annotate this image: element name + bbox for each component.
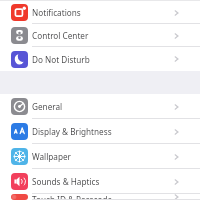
- button[interactable]: Sounds & Haptics: [0, 169, 200, 194]
- staticText: Wallpaper: [32, 151, 71, 162]
- button[interactable]: Do Not Disturb: [0, 47, 200, 71]
- button[interactable]: Notifications: [0, 1, 200, 24]
- button[interactable]: General: [0, 94, 200, 119]
- staticText: Sounds & Haptics: [32, 176, 100, 187]
- staticText: Display & Brightness: [32, 126, 112, 137]
- staticText: Touch ID & Passcode: [32, 194, 113, 200]
- staticText: General: [32, 101, 63, 112]
- staticText: Do Not Disturb: [32, 54, 90, 65]
- button[interactable]: Wallpaper: [0, 144, 200, 169]
- staticText: Notifications: [32, 7, 81, 18]
- button[interactable]: Display & Brightness: [0, 119, 200, 144]
- button[interactable]: Control Center: [0, 24, 200, 47]
- button[interactable]: Touch ID & Passcode: [0, 194, 200, 200]
- staticText: Control Center: [32, 30, 89, 41]
